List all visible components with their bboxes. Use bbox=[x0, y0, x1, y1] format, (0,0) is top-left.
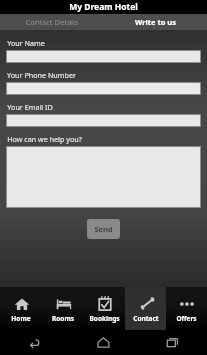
button[interactable]: Rooms bbox=[42, 287, 84, 330]
button[interactable]: Back bbox=[0, 330, 69, 355]
button[interactable] bbox=[6, 82, 201, 95]
staticText: Bookings bbox=[89, 314, 120, 323]
button[interactable]: Offers bbox=[166, 287, 207, 330]
staticText: Write to us bbox=[135, 17, 176, 27]
button[interactable]: Home bbox=[69, 330, 138, 355]
button[interactable]: Contact bbox=[125, 287, 166, 330]
staticText: Rooms bbox=[52, 314, 74, 323]
staticText: Offers bbox=[176, 314, 197, 323]
button[interactable]: Recents bbox=[138, 330, 207, 355]
staticText: Your Name bbox=[7, 38, 45, 48]
staticText: Your Email ID bbox=[7, 102, 53, 112]
staticText: Home bbox=[11, 314, 31, 323]
button[interactable]: Home bbox=[0, 287, 42, 330]
button[interactable]: Write to us bbox=[103, 14, 207, 30]
staticText: Your Phone Number bbox=[7, 70, 76, 80]
button[interactable]: Bookings bbox=[84, 287, 125, 330]
staticText: My Dream Hotel bbox=[69, 1, 138, 13]
button[interactable] bbox=[6, 146, 201, 208]
button[interactable] bbox=[6, 50, 201, 63]
button[interactable] bbox=[6, 114, 201, 127]
staticText: How can we help you? bbox=[7, 134, 82, 144]
staticText: Contact bbox=[133, 314, 159, 323]
staticText: Send bbox=[94, 224, 113, 234]
button[interactable]: Contact Details bbox=[0, 14, 103, 30]
button[interactable]: Send bbox=[87, 219, 120, 239]
staticText: Contact Details bbox=[25, 17, 79, 27]
